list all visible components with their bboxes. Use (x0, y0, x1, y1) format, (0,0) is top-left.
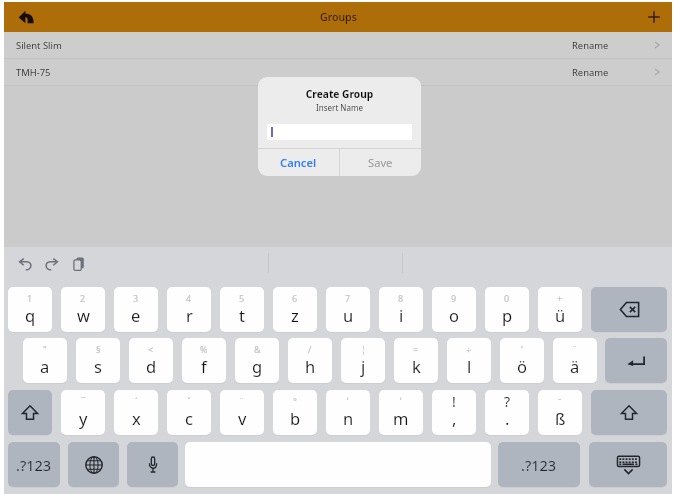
button[interactable]: 3 (114, 287, 158, 332)
staticText: ü (555, 304, 566, 326)
staticText: z (291, 304, 299, 326)
staticText: 3 (133, 292, 139, 304)
staticText: § (96, 343, 101, 355)
button[interactable]: Return (605, 338, 667, 383)
staticText: x (132, 407, 141, 429)
staticText: 4 (186, 292, 192, 304)
staticText: t (239, 304, 245, 326)
button[interactable]: 5 (220, 287, 264, 332)
staticText: ? (504, 392, 511, 411)
button[interactable]: 4 (167, 287, 211, 332)
staticText: p (502, 304, 513, 326)
button[interactable]: 1 (8, 287, 52, 332)
button[interactable]: < (129, 338, 173, 383)
staticText: ! (452, 392, 456, 411)
button[interactable]: ° (273, 390, 317, 435)
button[interactable]: ¨ (553, 338, 597, 383)
staticText: " (43, 343, 47, 355)
staticText: s (94, 355, 102, 377)
button[interactable]: Add group (642, 5, 666, 29)
button[interactable]: / (288, 338, 332, 383)
staticText: l (467, 355, 472, 377)
staticText: q (25, 304, 36, 326)
staticText: o (449, 304, 459, 326)
button[interactable]: " (23, 338, 67, 383)
staticText: .?123 (521, 455, 557, 475)
button[interactable]: ˈ (379, 390, 423, 435)
button[interactable]: Hide keyboard (589, 442, 667, 487)
button[interactable]: TMH-75 (4, 59, 672, 85)
staticText: ö (517, 355, 527, 377)
button[interactable]: ˇ (167, 390, 211, 435)
staticText: 2 (80, 292, 86, 304)
button[interactable]: % (182, 338, 226, 383)
button[interactable]: § (76, 338, 120, 383)
staticText: e (131, 304, 141, 326)
button[interactable]: & (235, 338, 279, 383)
button[interactable]: ! (432, 390, 476, 435)
button[interactable]: 2 (61, 287, 105, 332)
button[interactable]: Shift (591, 390, 667, 435)
button[interactable]: ¨ (220, 390, 264, 435)
button[interactable]: Change language (68, 442, 119, 487)
staticText: 9 (451, 292, 457, 304)
staticText: ¦ (361, 343, 366, 355)
staticText: a (40, 355, 50, 377)
staticText: Insert Name (258, 102, 421, 113)
button[interactable]: .?123 (498, 442, 580, 487)
button[interactable]: 6 (273, 287, 317, 332)
button[interactable]: ˈ (326, 390, 370, 435)
staticText: Rename (572, 66, 609, 79)
staticText: Silent Slim (16, 39, 62, 52)
button[interactable]: ' (500, 338, 544, 383)
staticText: , (452, 407, 457, 429)
staticText: ¨ (239, 395, 245, 407)
staticText: < (148, 343, 154, 355)
button[interactable]: ´ (114, 390, 158, 435)
button[interactable]: Shift (8, 390, 52, 435)
staticText: ' (521, 343, 524, 355)
button[interactable]: = (394, 338, 438, 383)
staticText: c (185, 407, 193, 429)
staticText: 1 (27, 292, 33, 304)
button[interactable]: ¦ (341, 338, 385, 383)
staticText: i (399, 304, 404, 326)
staticText: v (238, 407, 247, 429)
staticText: TMH-75 (16, 66, 51, 79)
button[interactable]: 0 (485, 287, 529, 332)
staticText: u (343, 304, 354, 326)
button[interactable]: 7 (326, 287, 370, 332)
button[interactable]: Save (340, 149, 421, 176)
button[interactable]: Back (12, 3, 40, 31)
staticText: f (201, 355, 207, 377)
staticText: Groups (320, 10, 357, 24)
staticText: r (186, 304, 193, 326)
staticText: n (343, 407, 354, 429)
button[interactable]: Backspace (591, 287, 667, 332)
staticText: Create Group (258, 87, 421, 101)
staticText: h (305, 355, 316, 377)
staticText: ˈ (400, 395, 402, 407)
button[interactable]: ÷ (447, 338, 491, 383)
button[interactable]: Redo (44, 256, 60, 272)
button[interactable]: 8 (379, 287, 423, 332)
staticText: k (412, 355, 421, 377)
staticText: g (252, 355, 263, 377)
button[interactable]: Dictation (127, 442, 178, 487)
staticText: & (254, 343, 261, 355)
button[interactable]: Paste (71, 256, 87, 272)
button[interactable]: ˘ (538, 390, 582, 435)
button[interactable]: .?123 (8, 442, 60, 487)
button[interactable]: ? (485, 390, 529, 435)
staticText: ÷ (466, 343, 472, 355)
staticText: ˇ (187, 395, 191, 407)
button[interactable]: 9 (432, 287, 476, 332)
button[interactable]: Silent Slim (4, 32, 672, 58)
button[interactable]: Cancel (258, 149, 339, 176)
staticText: 8 (398, 292, 404, 304)
staticText: Rename (572, 39, 609, 52)
button[interactable]: + (538, 287, 582, 332)
button[interactable]: ‾ (61, 390, 105, 435)
button[interactable]: Undo (17, 256, 33, 272)
